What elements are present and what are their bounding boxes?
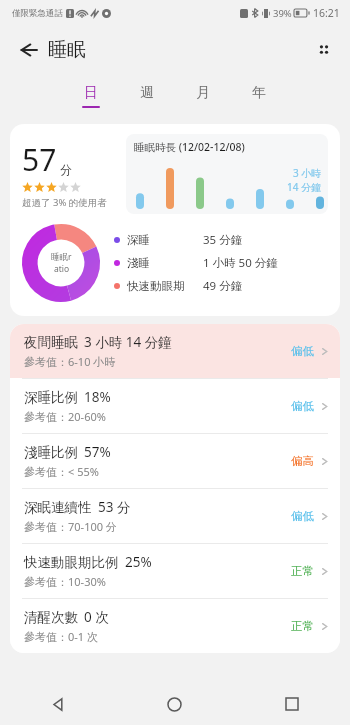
staticText: 3 小時 [293, 166, 322, 180]
staticText: 清醒次數 [24, 609, 78, 626]
button[interactable]: 年 [231, 74, 287, 118]
button[interactable]: 深眠連續性 [10, 489, 340, 543]
staticText: 1 小時 50 分鐘 [203, 255, 278, 271]
button[interactable]: 日 [63, 74, 119, 118]
staticText: 夜間睡眠 [24, 334, 78, 351]
staticText: 週 [140, 84, 154, 102]
staticText: 參考值：10-30% [24, 574, 106, 589]
staticText: 參考值：20-60% [24, 409, 106, 424]
staticText: 3 小時 14 分鐘 [84, 333, 172, 351]
button[interactable]: 月 [175, 74, 231, 118]
staticText: 睡眠時長 (12/02-12/08) [134, 140, 245, 154]
staticText: 49 分鐘 [203, 278, 243, 294]
staticText: 正常 [291, 619, 314, 633]
staticText: 53 分 [98, 498, 131, 516]
staticText: 35 分鐘 [203, 232, 243, 248]
staticText: 0 次 [84, 608, 109, 626]
staticText: 深睡 [127, 233, 150, 247]
staticText: 深眠連續性 [24, 499, 92, 516]
staticText: 超過了 3% 的使用者 [22, 196, 107, 209]
staticText: 16:21 [313, 6, 340, 20]
button[interactable]: More options [310, 36, 338, 64]
staticText: 正常 [291, 564, 314, 578]
staticText: 快速動眼期 [127, 279, 185, 293]
staticText: 淺睡 [127, 256, 150, 270]
staticText: 39% [273, 7, 292, 20]
staticText: 偏低 [291, 399, 314, 413]
staticText: 57% [84, 443, 111, 461]
staticText: 參考值：0-1 次 [24, 629, 98, 644]
staticText: 14 分鐘 [287, 180, 322, 194]
button[interactable]: 深睡比例 [10, 379, 340, 433]
button[interactable]: Back [0, 683, 116, 725]
staticText: 僅限緊急通話 [12, 8, 63, 19]
button[interactable]: 淺睡比例 [10, 434, 340, 488]
staticText: 淺睡比例 [24, 444, 78, 461]
staticText: 快速動眼期比例 [24, 554, 119, 571]
button[interactable]: Back [14, 36, 42, 64]
button[interactable]: 週 [119, 74, 175, 118]
staticText: 月 [196, 84, 210, 102]
staticText: 分 [60, 162, 72, 177]
staticText: atio [54, 263, 70, 275]
button[interactable]: 清醒次數 [10, 599, 340, 653]
staticText: 57 [22, 139, 57, 180]
staticText: 偏低 [291, 509, 314, 523]
staticText: 參考值：70-100 分 [24, 519, 117, 534]
button[interactable]: 快速動眼期比例 [10, 544, 340, 598]
button[interactable]: Home [116, 683, 233, 725]
button[interactable]: Recent apps [233, 683, 350, 725]
staticText: 睡眠r [51, 251, 72, 263]
button[interactable]: 夜間睡眠 [10, 324, 340, 378]
staticText: 深睡比例 [24, 389, 78, 406]
button[interactable]: 57 [10, 124, 340, 316]
staticText: 25% [125, 553, 152, 571]
staticText: 參考值：6-10 小時 [24, 354, 116, 369]
staticText: 偏高 [291, 454, 314, 468]
staticText: 年 [252, 84, 266, 102]
staticText: 18% [84, 388, 111, 406]
staticText: 日 [84, 84, 98, 102]
staticText: 參考值：< 55% [24, 464, 99, 479]
staticText: 偏低 [291, 344, 314, 358]
staticText: 睡眠 [48, 38, 86, 62]
